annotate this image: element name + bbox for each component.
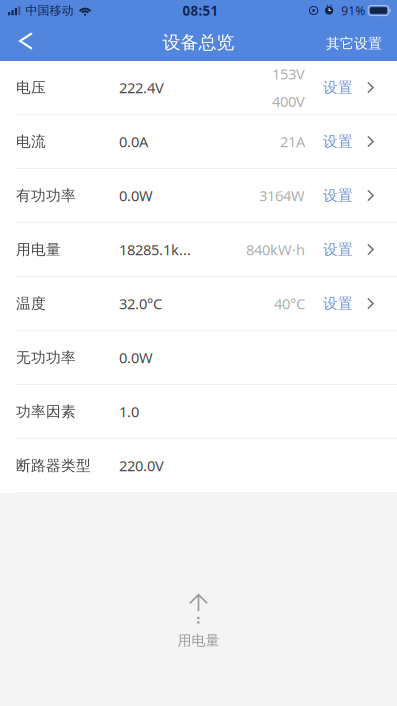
staticText: 设置 [323, 78, 353, 97]
staticText: 222.4V [119, 77, 164, 97]
staticText: 21A [280, 131, 305, 151]
staticText: 840kW·h [246, 239, 305, 259]
staticText: 0.0W [119, 185, 153, 205]
staticText: 无功功率 [16, 348, 76, 367]
staticText: 功率因素 [16, 402, 76, 421]
staticText: 153V [272, 64, 305, 84]
staticText: 中国移动 [25, 3, 73, 18]
staticText: 电流 [16, 132, 46, 151]
staticText: 电压 [16, 78, 46, 97]
staticText: 40°C [274, 293, 305, 313]
button[interactable]: 设置 [305, 280, 374, 327]
staticText: 0.0W [119, 347, 153, 367]
staticText: 设置 [323, 240, 353, 259]
button[interactable]: 设置 [305, 118, 374, 165]
staticText: 设置 [323, 186, 353, 205]
staticText: 0.0A [119, 131, 148, 151]
staticText: 3164W [259, 185, 305, 205]
staticText: 08:51 [182, 1, 218, 20]
staticText: 220.0V [119, 455, 164, 475]
button[interactable]: 设置 [305, 172, 374, 219]
staticText: 400V [272, 91, 305, 111]
staticText: 18285.1k... [119, 239, 191, 259]
staticText: 设置 [323, 132, 353, 151]
staticText: 用电量 [16, 240, 61, 259]
staticText: 设备总览 [162, 31, 234, 54]
button[interactable]: 设置 [305, 226, 374, 273]
button[interactable]: Back [0, 22, 47, 60]
staticText: 其它设置 [326, 35, 382, 52]
staticText: 设置 [323, 294, 353, 313]
button[interactable]: 设置 [305, 64, 374, 111]
staticText: 32.0°C [119, 293, 162, 313]
staticText: 有功功率 [16, 186, 76, 205]
staticText: 1.0 [119, 401, 139, 421]
staticText: 断路器类型 [16, 456, 91, 475]
button[interactable]: 其它设置 [312, 22, 397, 60]
staticText: 用电量 [177, 632, 219, 649]
staticText: 91% [341, 2, 365, 19]
staticText: 温度 [16, 294, 46, 313]
